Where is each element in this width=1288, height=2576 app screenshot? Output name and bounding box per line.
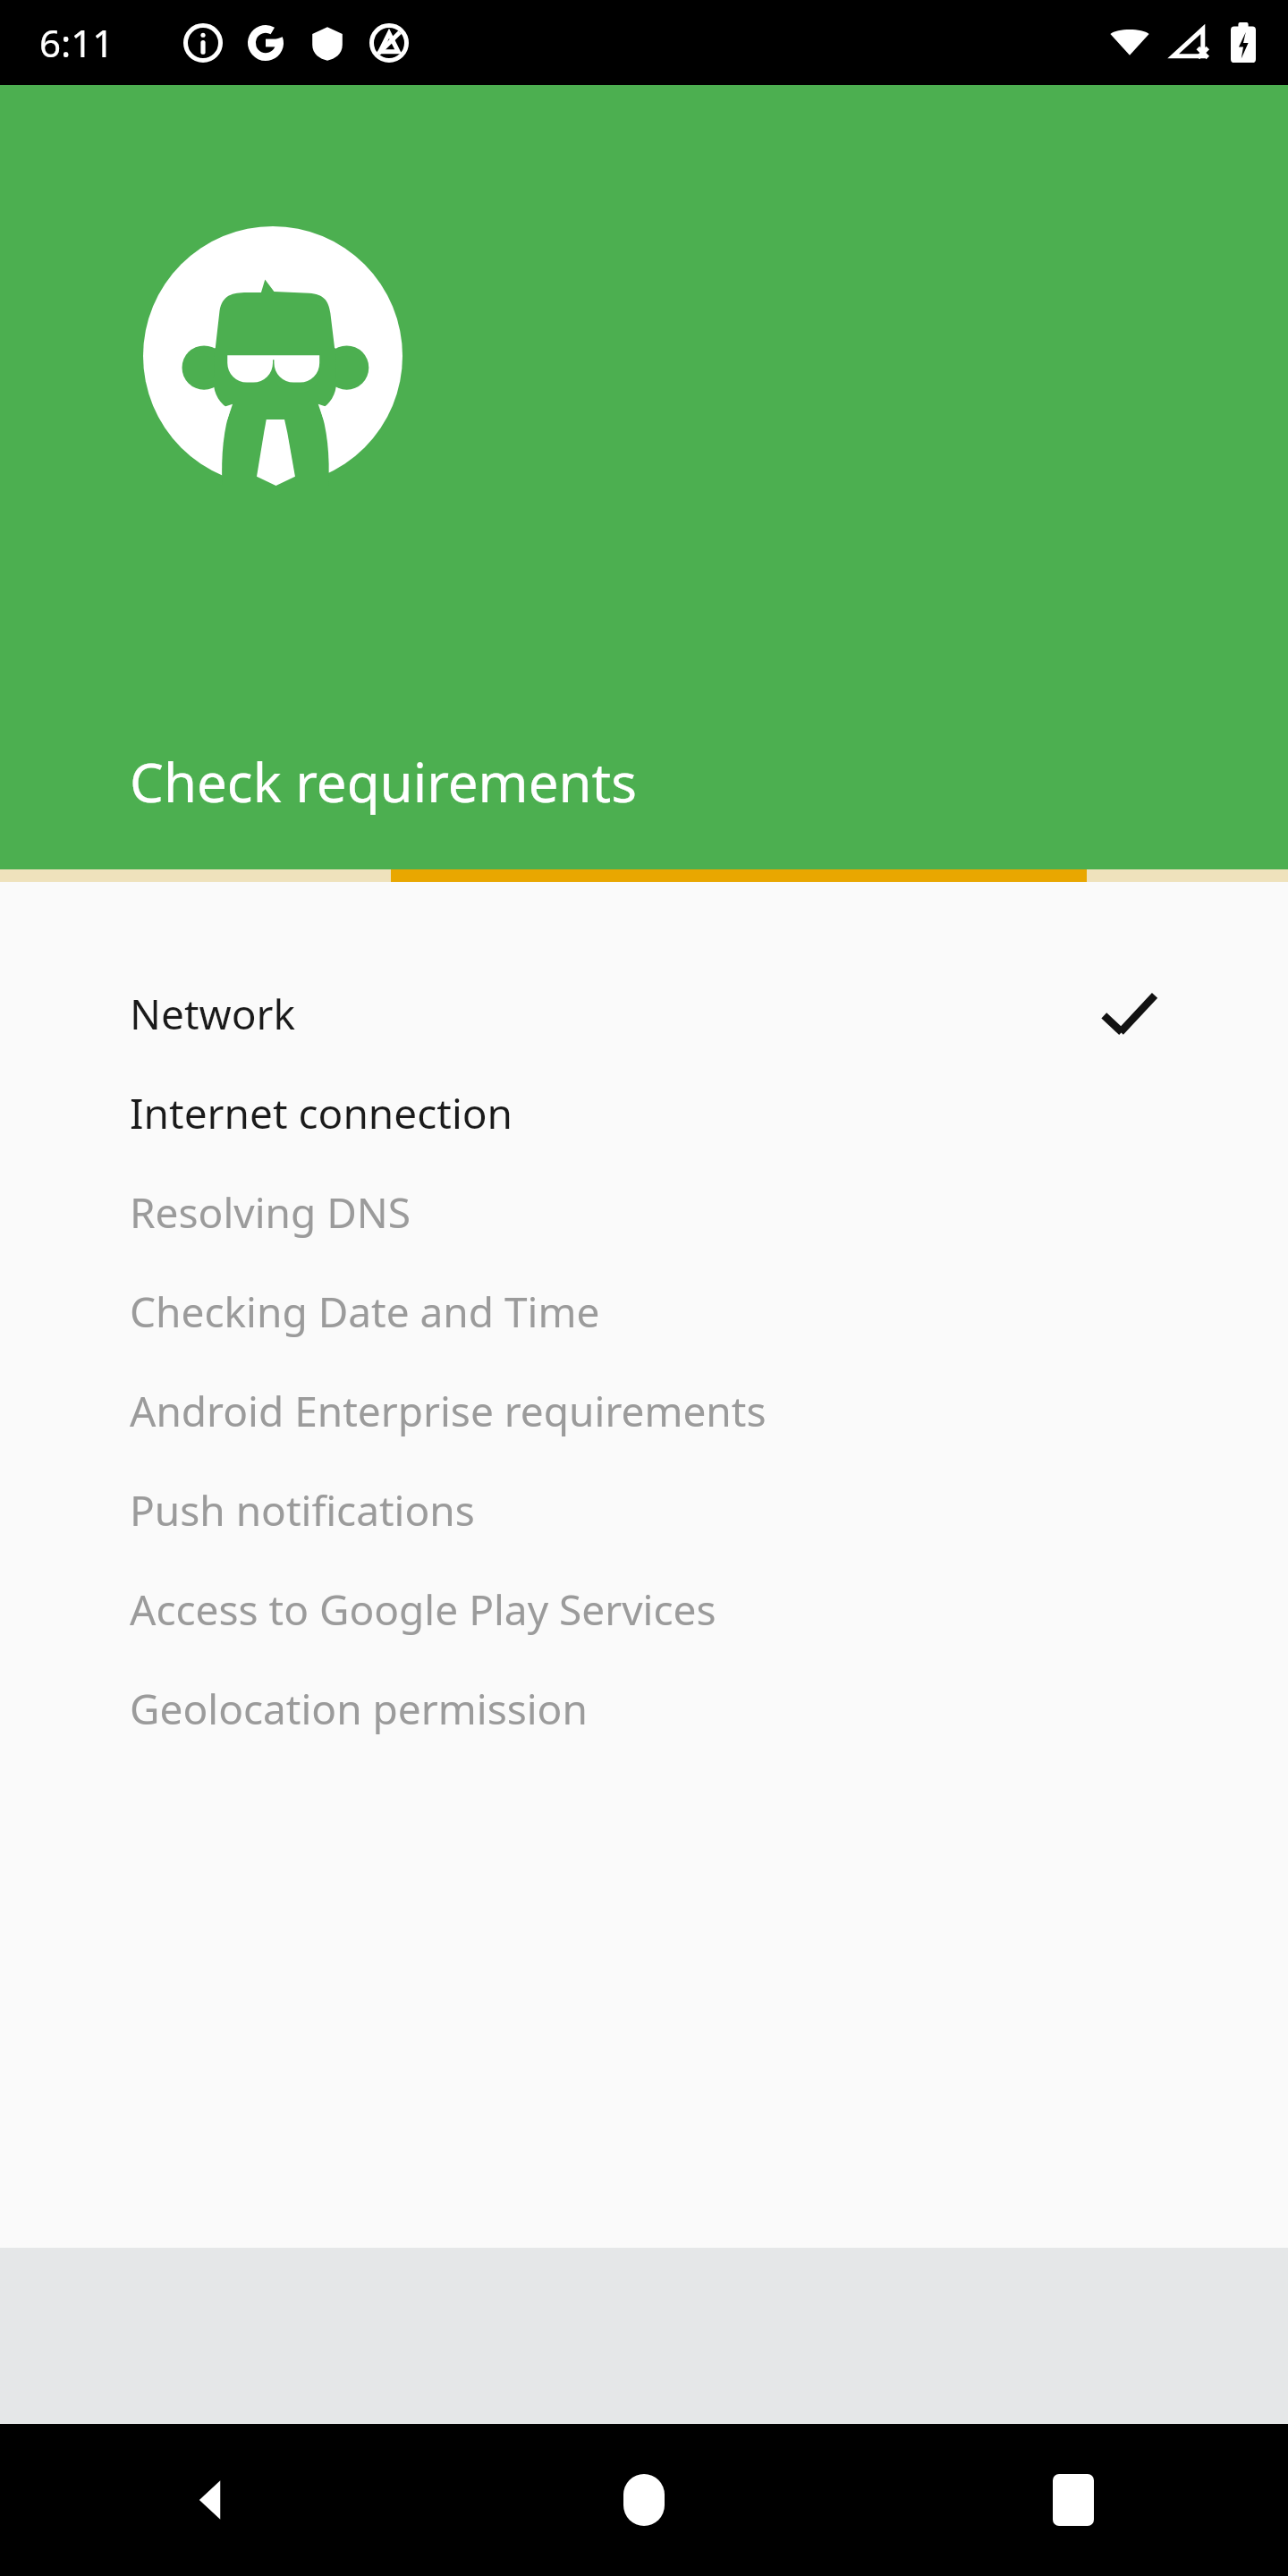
button[interactable]: Checking Date and Time xyxy=(0,1262,1288,1361)
button[interactable]: Network xyxy=(0,964,1288,1063)
staticText: Geolocation permission xyxy=(130,1681,1158,1737)
button[interactable]: Internet connection xyxy=(0,1063,1288,1163)
button[interactable]: Geolocation permission xyxy=(0,1659,1288,1758)
button[interactable]: Recent apps xyxy=(859,2424,1288,2576)
staticText: Internet connection xyxy=(130,1085,1158,1141)
staticText: Network xyxy=(130,986,1099,1042)
button[interactable]: Android Enterprise requirements xyxy=(0,1361,1288,1461)
staticText: Android Enterprise requirements xyxy=(130,1383,1158,1439)
staticText: Check requirements xyxy=(130,745,637,818)
staticText: 6:11 xyxy=(39,17,114,68)
button[interactable]: Resolving DNS xyxy=(0,1163,1288,1262)
staticText: Push notifications xyxy=(130,1482,1158,1538)
staticText: Resolving DNS xyxy=(130,1184,1158,1241)
button[interactable]: Push notifications xyxy=(0,1461,1288,1560)
button[interactable]: Access to Google Play Services xyxy=(0,1560,1288,1659)
staticText: Checking Date and Time xyxy=(130,1284,1158,1340)
button[interactable]: Home xyxy=(429,2424,859,2576)
staticText: Access to Google Play Services xyxy=(130,1581,1158,1638)
button[interactable]: Back xyxy=(0,2424,429,2576)
